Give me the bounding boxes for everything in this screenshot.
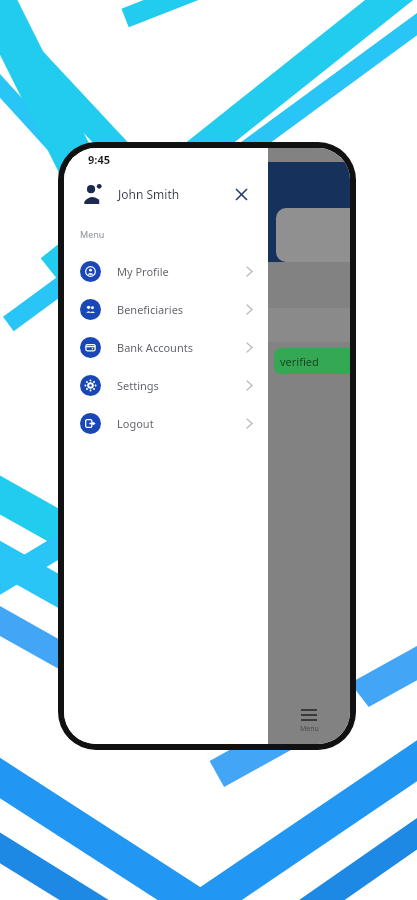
- button[interactable]: verified: [274, 348, 350, 374]
- staticText: Menu: [300, 724, 319, 734]
- button[interactable]: My Profile: [64, 252, 268, 290]
- staticText: My Profile: [117, 264, 169, 279]
- button[interactable]: Close: [230, 183, 252, 205]
- staticText: Logout: [117, 416, 154, 431]
- button[interactable]: Bank Accounts: [64, 328, 268, 366]
- staticText: Menu: [80, 228, 105, 240]
- staticText: John Smith: [118, 186, 180, 202]
- button[interactable]: Menu: [268, 709, 350, 734]
- staticText: Settings: [117, 378, 159, 393]
- button[interactable]: Logout: [64, 404, 268, 442]
- staticText: Beneficiaries: [117, 302, 184, 317]
- staticText: Bank Accounts: [117, 340, 193, 355]
- button[interactable]: Beneficiaries: [64, 290, 268, 328]
- staticText: 9:45: [88, 152, 110, 167]
- button[interactable]: Settings: [64, 366, 268, 404]
- staticText: verified: [280, 354, 319, 369]
